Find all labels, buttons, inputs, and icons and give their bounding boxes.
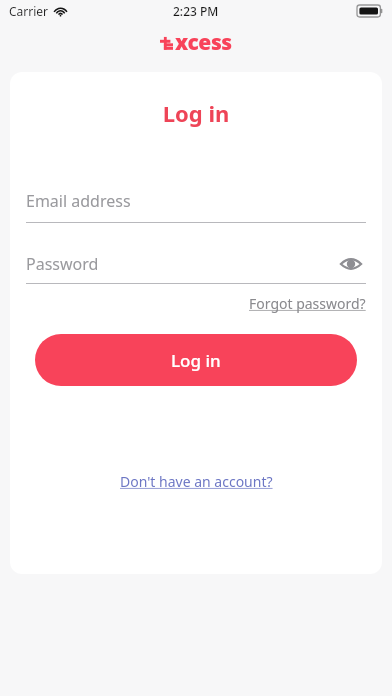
staticText: Log in (171, 349, 221, 372)
button[interactable]: Don't have an account? (120, 472, 273, 491)
staticText: 2:23 PM (173, 3, 219, 19)
button[interactable]: Log in (35, 334, 357, 386)
staticText: xcess (175, 28, 232, 57)
button[interactable]: Password (26, 249, 366, 279)
button[interactable]: Show password (336, 249, 366, 279)
staticText: Carrier (9, 3, 49, 19)
staticText: Email address (26, 190, 131, 212)
button[interactable]: Email address (26, 190, 366, 223)
button[interactable]: Forgot password? (249, 294, 366, 313)
staticText: Log in (10, 98, 382, 128)
staticText: Password (26, 253, 336, 275)
